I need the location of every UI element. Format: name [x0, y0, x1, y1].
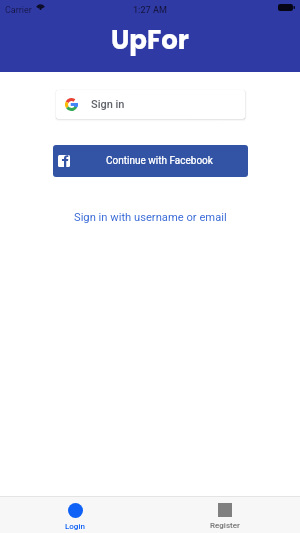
button[interactable]: Login [0, 497, 150, 533]
staticText: Carrier [5, 5, 32, 16]
button[interactable]: Register [150, 497, 300, 533]
staticText: 1:27 AM [133, 5, 167, 16]
button[interactable]: Continue with Facebook [53, 145, 248, 177]
button[interactable]: Sign in with username or email [64, 207, 237, 228]
staticText: Login [65, 522, 85, 531]
staticText: Register [210, 521, 240, 530]
staticText: Continue with Facebook [106, 155, 213, 167]
staticText: Sign in [91, 98, 125, 111]
button[interactable]: Sign in [56, 90, 245, 119]
staticText: UpFor [111, 22, 189, 58]
staticText: Sign in with username or email [74, 211, 227, 224]
